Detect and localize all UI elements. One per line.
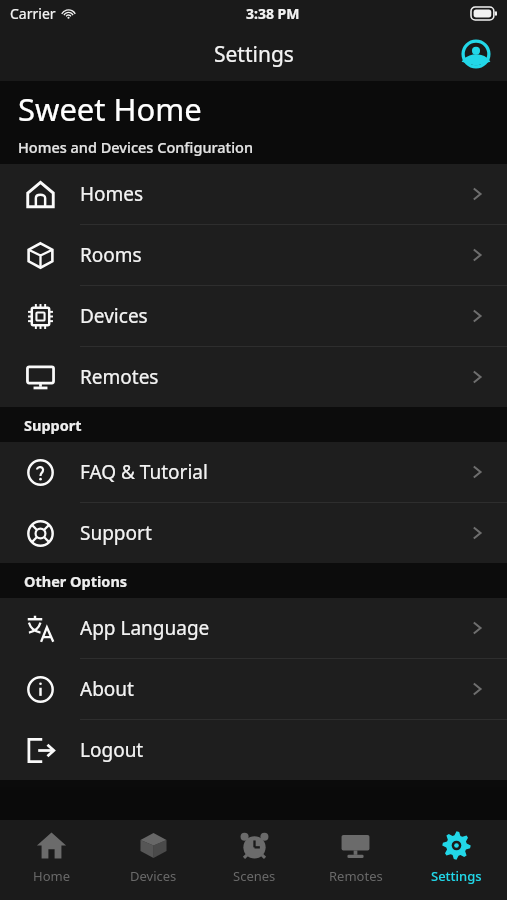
- staticText: Remotes: [329, 867, 383, 885]
- staticText: Settings: [431, 867, 482, 885]
- button[interactable]: Homes: [0, 164, 507, 224]
- staticText: Home: [33, 867, 70, 885]
- button[interactable]: Scenes: [204, 820, 305, 900]
- button[interactable]: Home: [0, 820, 102, 900]
- staticText: Other Options: [24, 571, 128, 591]
- button[interactable]: Devices: [102, 820, 204, 900]
- staticText: Homes: [80, 181, 469, 207]
- button[interactable]: Support: [0, 503, 507, 563]
- staticText: Logout: [80, 737, 469, 763]
- button[interactable]: About: [0, 659, 507, 719]
- button[interactable]: Rooms: [0, 225, 507, 285]
- staticText: Support: [24, 415, 82, 435]
- staticText: Devices: [130, 867, 177, 885]
- button[interactable]: Remotes: [305, 820, 406, 900]
- staticText: Settings: [214, 40, 294, 69]
- staticText: FAQ & Tutorial: [80, 459, 469, 485]
- staticText: Carrier: [10, 4, 56, 23]
- staticText: Sweet Home: [18, 88, 202, 130]
- staticText: App Language: [80, 615, 469, 641]
- button[interactable]: Settings: [406, 820, 507, 900]
- staticText: 3:38 PM: [246, 4, 300, 23]
- staticText: Rooms: [80, 242, 469, 268]
- button[interactable]: App Language: [0, 598, 507, 658]
- staticText: Homes and Devices Configuration: [18, 137, 254, 157]
- staticText: Devices: [80, 303, 469, 329]
- button[interactable]: Remotes: [0, 347, 507, 407]
- staticText: Remotes: [80, 364, 469, 390]
- button[interactable]: FAQ & Tutorial: [0, 442, 507, 502]
- button[interactable]: Devices: [0, 286, 507, 346]
- staticText: Support: [80, 520, 469, 546]
- staticText: Scenes: [233, 867, 276, 885]
- button[interactable]: Account: [459, 37, 493, 71]
- button[interactable]: Logout: [0, 720, 507, 780]
- staticText: About: [80, 676, 469, 702]
